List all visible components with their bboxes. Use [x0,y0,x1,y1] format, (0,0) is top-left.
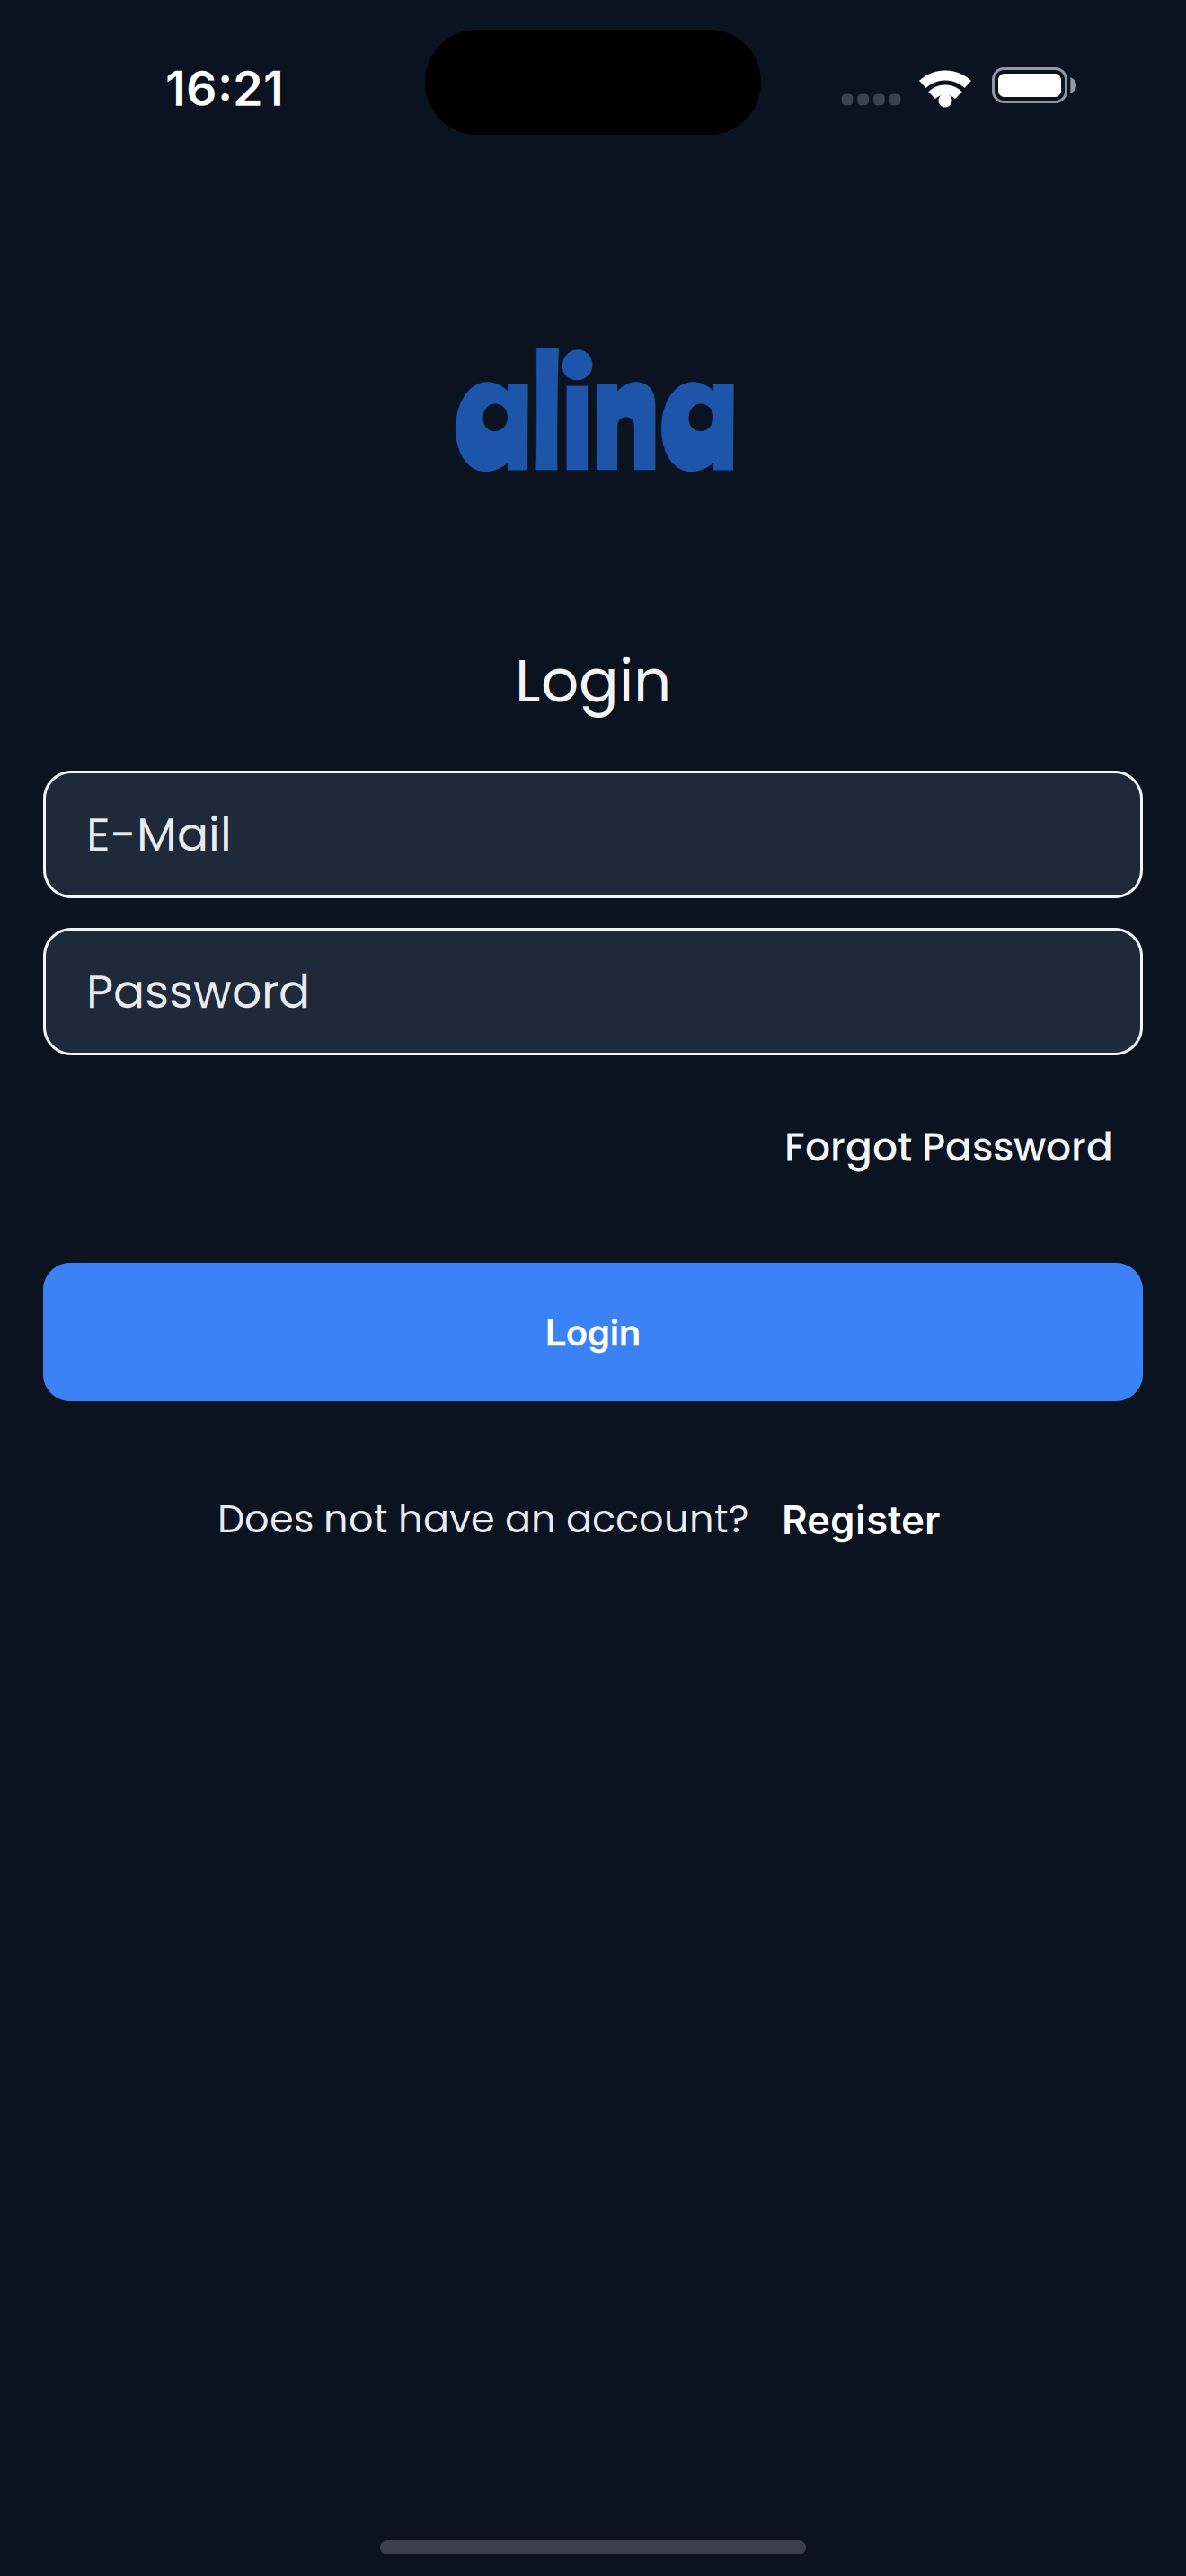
staticText: Register [782,1496,940,1544]
staticText: 16:21 [165,59,284,117]
staticText: Password [86,959,310,1024]
staticText: alina [454,320,737,499]
staticText: E-Mail [86,802,232,867]
staticText: Login [545,1309,641,1355]
staticText: Login [515,639,671,722]
staticText: Does not have an account? [217,1492,749,1546]
staticText: Forgot Password [784,1119,1113,1175]
